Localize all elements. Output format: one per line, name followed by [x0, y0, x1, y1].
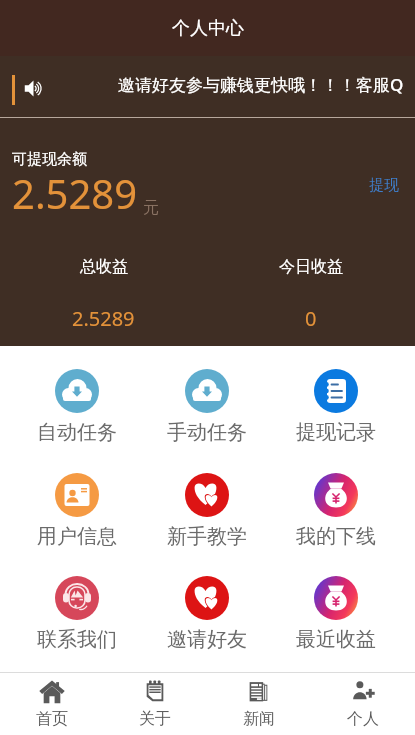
- staticText: 新闻: [243, 709, 275, 729]
- staticText: 用户信息: [37, 524, 117, 549]
- staticText: 自动任务: [37, 420, 117, 445]
- staticText: 个人中心: [172, 17, 244, 40]
- button[interactable]: Announcement: [24, 79, 43, 98]
- button[interactable]: 手动任务: [142, 369, 271, 445]
- button[interactable]: 新闻: [207, 672, 311, 735]
- button[interactable]: 联系我们: [12, 576, 142, 652]
- button[interactable]: 提现: [369, 176, 399, 195]
- button[interactable]: 关于: [103, 672, 207, 735]
- staticText: 联系我们: [37, 627, 117, 652]
- button[interactable]: 用户信息: [12, 473, 142, 549]
- button[interactable]: 个人: [311, 672, 415, 735]
- staticText: 首页: [36, 709, 68, 729]
- staticText: 我的下线: [296, 524, 376, 549]
- staticText: 总收益: [80, 257, 128, 277]
- staticText: 最近收益: [296, 627, 376, 652]
- button[interactable]: 提现记录: [271, 369, 400, 445]
- staticText: 手动任务: [167, 420, 247, 445]
- staticText: 邀请好友: [167, 627, 247, 652]
- button[interactable]: 邀请好友: [142, 576, 271, 652]
- staticText: 今日收益: [279, 257, 343, 277]
- staticText: 元: [143, 198, 159, 218]
- staticText: 2.5289: [12, 166, 138, 220]
- button[interactable]: 新手教学: [142, 473, 271, 549]
- staticText: 提现记录: [296, 420, 376, 445]
- staticText: 0: [305, 305, 317, 332]
- staticText: 2.5289: [72, 305, 135, 332]
- button[interactable]: 我的下线: [271, 473, 400, 549]
- staticText: 提现: [369, 176, 399, 195]
- button[interactable]: 首页: [0, 672, 103, 735]
- button[interactable]: 最近收益: [271, 576, 400, 652]
- button[interactable]: 自动任务: [12, 369, 142, 445]
- staticText: 个人: [347, 709, 379, 729]
- staticText: 邀请好友参与赚钱更快哦！！！客服Q: [118, 73, 404, 96]
- staticText: 可提现余额: [12, 150, 87, 169]
- staticText: 关于: [139, 709, 171, 729]
- staticText: 新手教学: [167, 524, 247, 549]
